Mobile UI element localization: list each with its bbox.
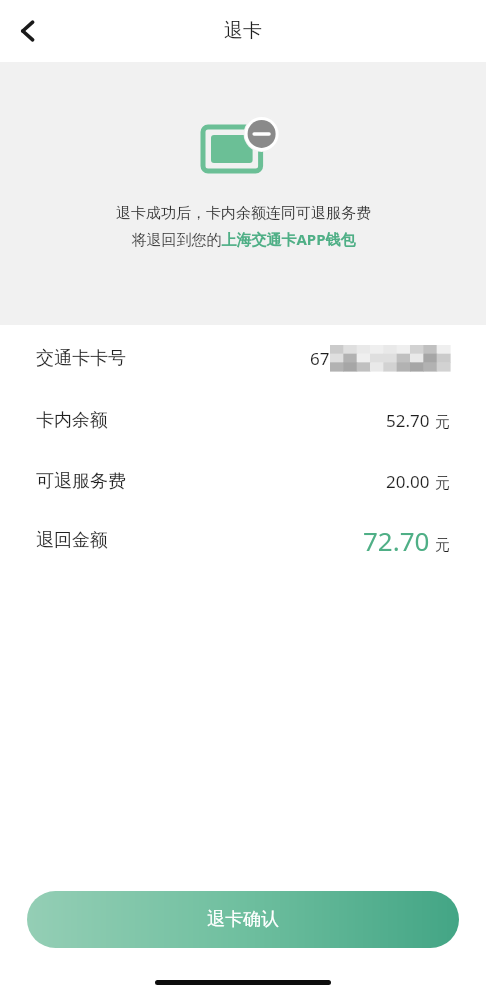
staticText: 退卡 <box>224 19 262 43</box>
staticText: 退回金额 <box>36 529 108 552</box>
staticText: 交通卡卡号 <box>36 347 126 370</box>
staticText: 卡内余额 <box>36 409 108 432</box>
staticText: 退卡确认 <box>207 908 279 931</box>
staticText: 可退服务费 <box>36 470 126 493</box>
staticText: 退卡成功后，卡内余额连同可退服务费 <box>116 204 371 223</box>
staticText: 72.70 <box>363 523 430 558</box>
staticText: 20.00 <box>386 470 430 493</box>
staticText: 元 <box>435 536 450 555</box>
button[interactable]: 退卡确认 <box>27 891 459 948</box>
button[interactable]: Back <box>6 8 52 54</box>
staticText: 67 <box>310 347 330 370</box>
staticText: 将退回到您的上海交通卡APP钱包 <box>131 229 356 249</box>
staticText: 52.70 <box>386 409 430 432</box>
staticText: 元 <box>435 413 450 432</box>
staticText: 元 <box>435 474 450 493</box>
